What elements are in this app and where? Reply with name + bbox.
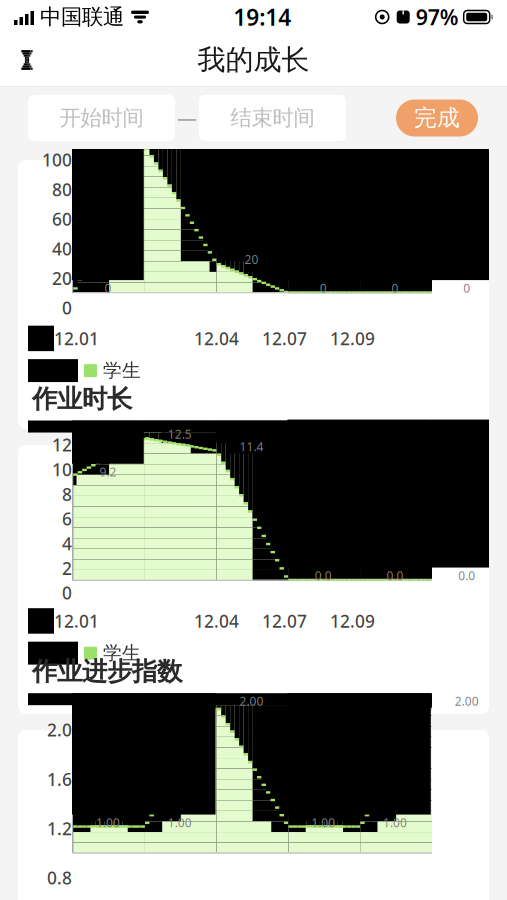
staticText: —: [177, 105, 197, 131]
staticText: 12.5: [168, 426, 192, 442]
staticText: 2.00: [239, 693, 263, 709]
staticText: 1.00: [168, 815, 192, 830]
staticText: 1.6: [47, 768, 72, 791]
button[interactable]: Back: [0, 36, 54, 84]
staticText: 开始时间: [59, 105, 143, 131]
staticText: 19:14: [233, 2, 291, 32]
staticText: 20: [52, 267, 72, 290]
staticText: 6: [62, 507, 72, 530]
staticText: 12.04: [194, 327, 239, 350]
staticText: 60: [52, 208, 72, 231]
staticText: 0.0: [458, 568, 475, 583]
staticText: 9.2: [99, 464, 116, 480]
staticText: 0: [62, 296, 72, 319]
staticText: 作业时长: [32, 383, 132, 414]
staticText: 中国联通: [40, 4, 124, 30]
staticText: 1.00: [311, 815, 335, 830]
button[interactable]: 开始时间: [28, 95, 175, 141]
staticText: 作业进步指数: [32, 656, 182, 687]
staticText: 12.07: [262, 609, 307, 632]
staticText: 学生: [103, 642, 141, 665]
button[interactable]: 结束时间: [199, 95, 346, 141]
staticText: 0: [62, 581, 72, 604]
staticText: 0.0: [386, 568, 403, 583]
staticText: 2.00: [455, 693, 479, 709]
staticText: 12.09: [330, 609, 375, 632]
staticText: 1.00: [383, 815, 407, 830]
staticText: 0: [104, 280, 111, 296]
staticText: 0: [463, 280, 470, 296]
staticText: 12.04: [194, 609, 239, 632]
staticText: 12.01: [54, 327, 99, 350]
staticText: 12.01: [54, 609, 99, 632]
staticText: 0: [391, 280, 398, 296]
staticText: 结束时间: [230, 105, 314, 131]
staticText: 学生: [103, 359, 141, 382]
staticText: 2: [62, 557, 72, 580]
staticText: 2.0: [47, 718, 72, 741]
staticText: 0.0: [315, 568, 332, 583]
staticText: 11.4: [239, 439, 263, 455]
staticText: 12: [52, 433, 72, 456]
staticText: 100: [42, 148, 72, 171]
staticText: 40: [52, 237, 72, 260]
staticText: 我的成长: [197, 43, 309, 77]
staticText: 0.8: [47, 866, 72, 889]
staticText: 完成: [414, 104, 460, 132]
staticText: 1.2: [47, 817, 72, 840]
staticText: 0: [320, 280, 327, 296]
staticText: 80: [52, 178, 72, 201]
staticText: 100: [169, 133, 190, 149]
staticText: 1.00: [96, 815, 120, 830]
staticText: 12.07: [262, 327, 307, 350]
staticText: 8: [62, 483, 72, 506]
staticText: 4: [62, 532, 72, 555]
staticText: 作业完成率: [32, 96, 157, 127]
staticText: 97%: [416, 3, 459, 31]
button[interactable]: 完成: [396, 99, 478, 136]
staticText: 10: [52, 458, 72, 481]
staticText: 20: [244, 251, 258, 267]
staticText: 12.09: [330, 327, 375, 350]
